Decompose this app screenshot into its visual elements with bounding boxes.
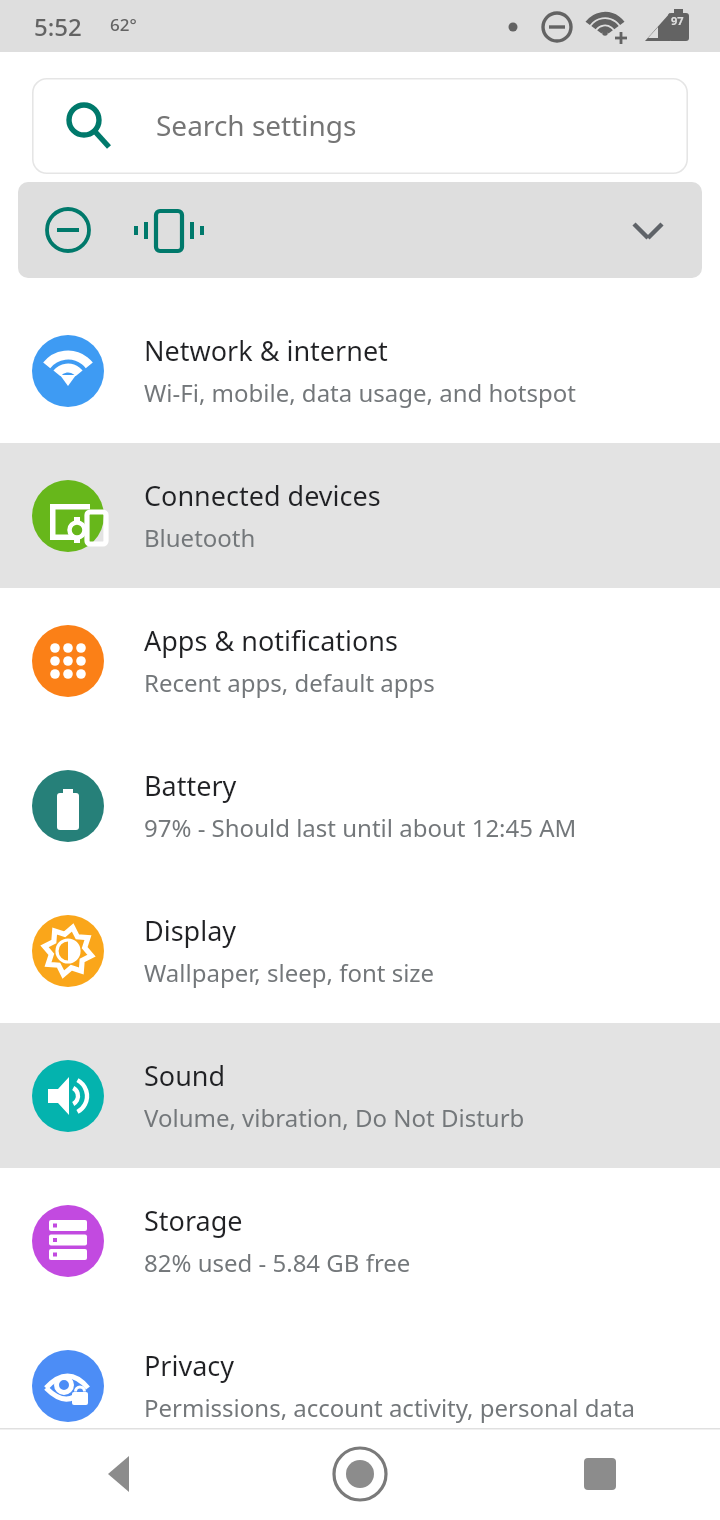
- staticText: Wallpaper, sleep, font size: [144, 956, 435, 989]
- staticText: Privacy: [144, 1347, 235, 1384]
- button[interactable]: Home: [240, 1428, 480, 1520]
- staticText: 97% - Should last until about 12:45 AM: [144, 811, 577, 844]
- staticText: Wi-Fi, mobile, data usage, and hotspot: [144, 376, 576, 409]
- button[interactable]: Storage: [0, 1168, 720, 1313]
- staticText: 82% used - 5.84 GB free: [144, 1246, 411, 1279]
- staticText: 62°: [110, 13, 137, 36]
- staticText: Display: [144, 912, 237, 949]
- button[interactable]: Back: [0, 1428, 240, 1520]
- button[interactable]: Display: [0, 878, 720, 1023]
- staticText: 97: [671, 13, 684, 28]
- staticText: Recent apps, default apps: [144, 666, 435, 699]
- staticText: Permissions, account activity, personal …: [144, 1391, 636, 1424]
- button[interactable]: Privacy: [0, 1313, 720, 1458]
- button[interactable]: Do Not Disturb: [18, 182, 702, 278]
- staticText: Bluetooth: [144, 521, 256, 554]
- staticText: Network & internet: [144, 332, 388, 369]
- staticText: Sound: [144, 1057, 226, 1094]
- staticText: 5:52: [34, 10, 82, 43]
- button[interactable]: Battery: [0, 733, 720, 878]
- staticText: Battery: [144, 767, 237, 804]
- button[interactable]: Connected devices: [0, 443, 720, 588]
- button[interactable]: Sound: [0, 1023, 720, 1168]
- staticText: Search settings: [156, 106, 357, 144]
- button[interactable]: Recents: [480, 1428, 720, 1520]
- button[interactable]: Network & internet: [0, 298, 720, 443]
- staticText: Storage: [144, 1202, 243, 1239]
- button[interactable]: Search settings: [32, 78, 688, 174]
- staticText: Apps & notifications: [144, 622, 398, 659]
- staticText: Connected devices: [144, 477, 381, 514]
- staticText: Volume, vibration, Do Not Disturb: [144, 1101, 525, 1134]
- button[interactable]: Apps & notifications: [0, 588, 720, 733]
